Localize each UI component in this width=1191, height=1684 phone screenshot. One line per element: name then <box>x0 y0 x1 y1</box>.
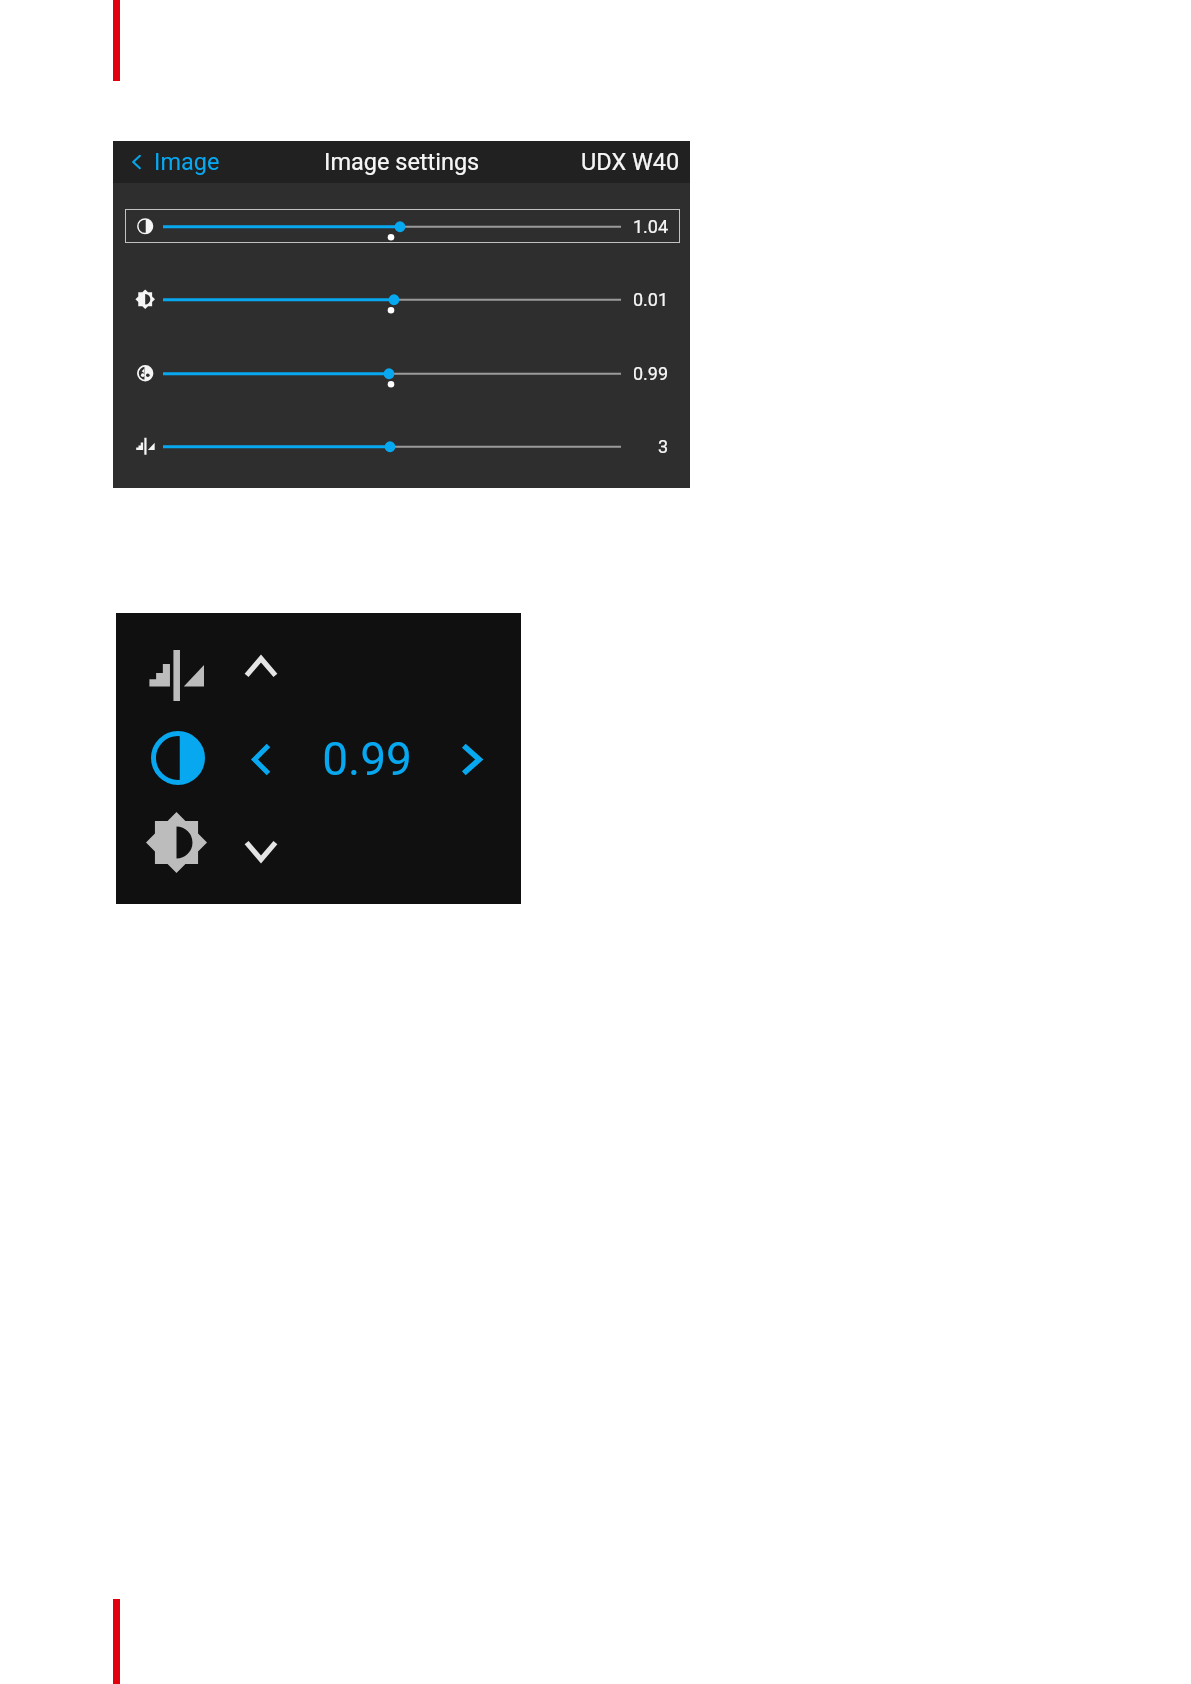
staticText: Image <box>154 148 220 176</box>
staticText: 1.04 <box>633 216 669 237</box>
staticText: Image settings <box>324 148 480 176</box>
button[interactable]: Increase value <box>461 743 482 776</box>
staticText: UDX W40 <box>581 148 680 176</box>
button[interactable]: 0.01 <box>125 282 680 316</box>
button[interactable]: Decrease value <box>252 743 271 776</box>
button[interactable]: 0.99 <box>125 356 680 390</box>
button[interactable]: 1.04 <box>125 209 680 243</box>
button[interactable]: 3 <box>125 429 680 463</box>
staticText: 0.01 <box>633 289 669 310</box>
button[interactable]: Previous setting <box>244 656 278 678</box>
staticText: 0.99 <box>633 363 669 384</box>
button[interactable]: Image <box>132 141 690 183</box>
button[interactable]: Next setting <box>244 840 278 862</box>
staticText: 0.99 <box>309 732 425 786</box>
staticText: 3 <box>658 436 669 457</box>
